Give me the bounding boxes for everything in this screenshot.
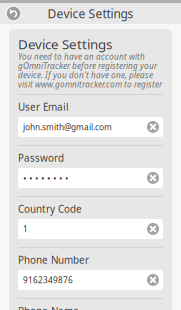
button[interactable]: Back xyxy=(3,3,24,24)
button[interactable]: • • • • • • • • xyxy=(18,168,163,188)
button[interactable]: 9162349876 xyxy=(18,270,163,290)
staticText: john.smith@gmail.com xyxy=(23,121,112,133)
staticText: Device Settings xyxy=(18,35,112,53)
button[interactable]: Clear text xyxy=(146,222,160,236)
staticText: Device Settings xyxy=(47,5,133,21)
staticText: Password xyxy=(18,151,64,165)
button[interactable]: 1 xyxy=(18,219,163,239)
staticText: 1 xyxy=(23,223,28,235)
button[interactable]: Clear text xyxy=(146,171,160,185)
button[interactable]: Clear text xyxy=(146,273,160,287)
staticText: Phone Number xyxy=(18,253,89,267)
button[interactable]: john.smith@gmail.com xyxy=(18,117,163,137)
button[interactable]: Clear text xyxy=(146,120,160,134)
staticText: Country Code xyxy=(18,202,82,216)
staticText: 9162349876 xyxy=(23,274,73,286)
staticText: User Email xyxy=(18,100,69,114)
staticText: Phone Name xyxy=(18,304,79,310)
staticText: You need to have an account with gOmniTr… xyxy=(18,52,162,89)
staticText: • • • • • • • • xyxy=(23,172,69,184)
